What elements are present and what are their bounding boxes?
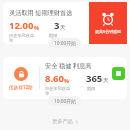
staticText: 历史年化收益率 <box>9 33 35 43</box>
staticText: 12.00 <box>9 19 34 32</box>
button[interactable]: 10:00开始 <box>48 38 81 48</box>
staticText: 10:00开始 <box>54 98 76 105</box>
staticText: 优选存12期 <box>9 84 33 90</box>
staticText: 安全 稳健 利息高 <box>45 61 92 69</box>
staticText: 10:00开始 <box>54 40 76 47</box>
button[interactable]: 优选存12期 <box>3 57 127 99</box>
button[interactable]: 最高5分钟赎回 <box>89 2 127 44</box>
staticText: 期限 <box>87 86 96 91</box>
staticText: 更多产品 <box>52 118 73 125</box>
staticText: 最高5分钟赎回 <box>95 29 122 34</box>
staticText: 灵活取用 短期理财首选 <box>9 8 73 16</box>
button[interactable]: 更多产品 <box>52 118 79 125</box>
button[interactable]: 灵活取用 短期理财首选 <box>3 2 130 44</box>
staticText: 3 <box>54 19 60 32</box>
staticText: 天 <box>60 24 66 31</box>
staticText: 天 <box>103 77 109 84</box>
staticText: % <box>34 24 39 31</box>
staticText: 期限 <box>49 33 58 38</box>
button[interactable]: 10:00开始 <box>48 96 81 106</box>
staticText: 历史年化收益率 <box>45 86 71 96</box>
staticText: % <box>64 77 69 84</box>
button[interactable]: Open <box>112 67 125 80</box>
staticText: 8.60 <box>45 72 64 85</box>
staticText: 365 <box>86 72 103 85</box>
